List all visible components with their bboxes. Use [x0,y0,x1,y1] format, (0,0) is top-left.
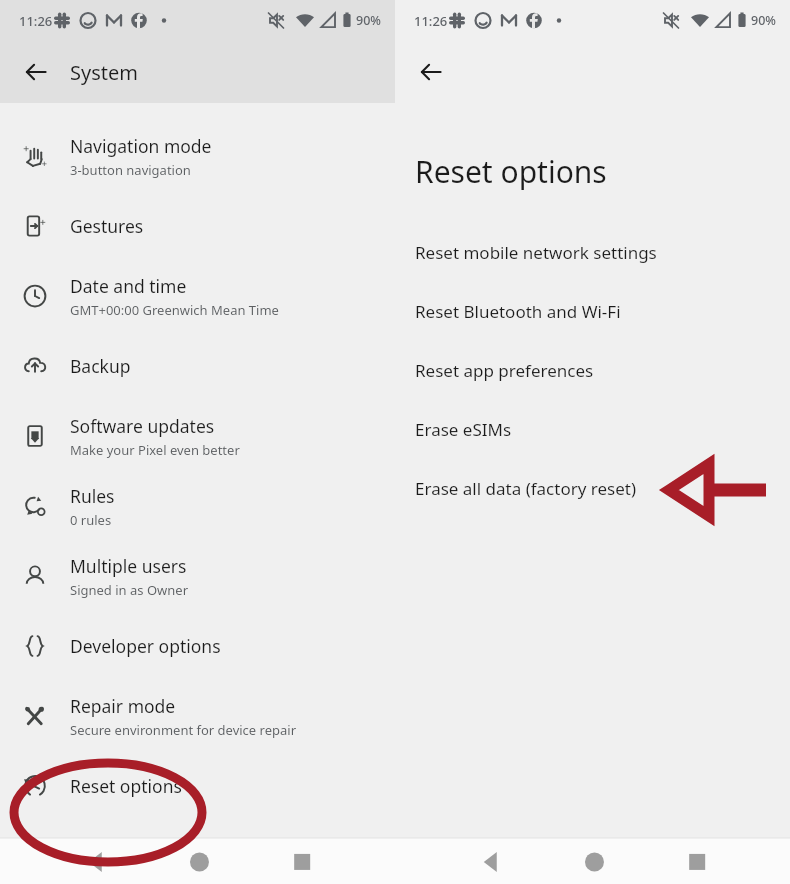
staticText: Reset options [415,151,607,192]
staticText: 0 rules [70,511,112,529]
button[interactable]: Rules [0,471,395,541]
staticText: Date and time [70,274,187,298]
staticText: Developer options [70,634,221,658]
staticText: Erase eSIMs [415,418,512,441]
staticText: 90% [356,12,381,29]
button[interactable]: Reset options [0,751,395,821]
staticText: Erase all data (factory reset) [415,477,637,500]
button[interactable]: Erase all data (factory reset) [395,459,790,518]
staticText: System [70,59,138,86]
button[interactable]: Gestures [0,191,395,261]
button[interactable]: Repair mode [0,681,395,751]
staticText: 11:26 [19,12,53,30]
staticText: Make your Pixel even better [70,441,240,459]
button[interactable]: Back [409,50,453,94]
staticText: Reset Bluetooth and Wi-Fi [415,300,621,323]
button[interactable]: Back [14,50,58,94]
staticText: Navigation mode [70,134,212,158]
staticText: Signed in as Owner [70,581,189,599]
button[interactable]: Reset app preferences [395,341,790,400]
button[interactable]: Erase eSIMs [395,400,790,459]
staticText: 3-button navigation [70,161,191,179]
staticText: Reset mobile network settings [415,241,657,264]
button[interactable]: Backup [0,331,395,401]
button[interactable]: Reset mobile network settings [395,223,790,282]
staticText: Multiple users [70,554,187,578]
staticText: Rules [70,484,115,508]
button[interactable]: Date and time [0,261,395,331]
staticText: Reset options [70,774,182,798]
staticText: Secure environment for device repair [70,721,297,739]
button[interactable]: Reset Bluetooth and Wi-Fi [395,282,790,341]
staticText: GMT+00:00 Greenwich Mean Time [70,301,279,319]
staticText: Backup [70,354,131,378]
staticText: 90% [751,12,776,29]
staticText: Reset app preferences [415,359,594,382]
staticText: Gestures [70,214,144,238]
button[interactable]: Multiple users [0,541,395,611]
button[interactable]: Navigation mode [0,121,395,191]
staticText: 11:26 [414,12,448,30]
button[interactable]: Developer options [0,611,395,681]
button[interactable]: Software updates [0,401,395,471]
staticText: Software updates [70,414,215,438]
staticText: Repair mode [70,694,176,718]
